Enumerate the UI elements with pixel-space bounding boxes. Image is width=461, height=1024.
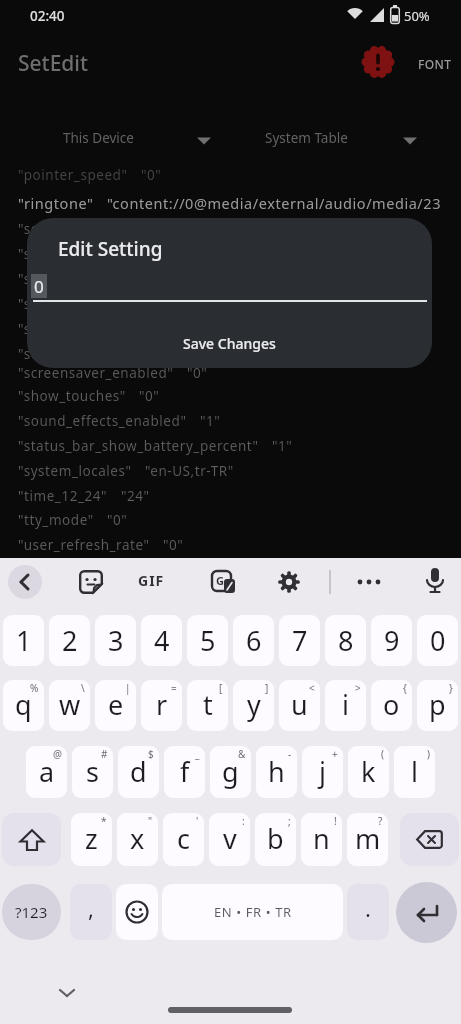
- button[interactable]: [355, 565, 385, 599]
- button[interactable]: .: [347, 884, 389, 940]
- staticText: "24": [121, 487, 150, 505]
- staticText: !: [334, 814, 337, 828]
- staticText: (: [381, 747, 384, 761]
- staticText: G: [216, 573, 224, 588]
- button[interactable]: [78, 569, 104, 595]
- button[interactable]: ?123: [2, 884, 61, 940]
- button[interactable]: u: [279, 680, 320, 731]
- button[interactable]: m: [347, 813, 388, 866]
- staticText: {: [403, 681, 407, 695]
- staticText: 02:40: [30, 7, 65, 25]
- button[interactable]: [116, 884, 158, 940]
- button[interactable]: y: [233, 680, 274, 731]
- button[interactable]: c: [163, 813, 204, 866]
- button[interactable]: e: [95, 680, 136, 731]
- staticText: p: [429, 686, 446, 723]
- button[interactable]: [424, 567, 446, 597]
- button[interactable]: g: [210, 746, 251, 798]
- button[interactable]: 4: [141, 615, 182, 666]
- button[interactable]: GIF: [138, 571, 165, 590]
- button[interactable]: EN • FR • TR: [162, 884, 343, 940]
- button[interactable]: 2: [49, 615, 90, 666]
- staticText: k: [361, 753, 376, 790]
- staticText: 3: [108, 622, 124, 659]
- button[interactable]: 0: [417, 615, 458, 666]
- button[interactable]: h: [256, 746, 297, 798]
- button[interactable]: "time_12_24": [18, 487, 150, 505]
- staticText: b: [267, 820, 284, 857]
- button[interactable]: w: [49, 680, 90, 731]
- staticText: "screensaver_enabled": [18, 364, 174, 382]
- button[interactable]: q: [3, 680, 44, 731]
- staticText: 50%: [404, 7, 430, 25]
- button[interactable]: a: [26, 746, 67, 798]
- button[interactable]: x: [117, 813, 158, 866]
- button[interactable]: System Table: [231, 120, 461, 162]
- button[interactable]: This Device: [0, 120, 230, 162]
- staticText: "1": [272, 437, 293, 455]
- staticText: u: [291, 686, 308, 723]
- staticText: Save Changes: [183, 334, 276, 353]
- staticText: #: [101, 747, 108, 761]
- staticText: =: [171, 681, 177, 695]
- button[interactable]: Save Changes: [175, 326, 284, 361]
- button[interactable]: "screensaver_enabled": [18, 364, 208, 382]
- button[interactable]: "user_refresh_rate": [18, 536, 184, 554]
- button[interactable]: o: [371, 680, 412, 731]
- staticText: "pointer_speed": [18, 166, 128, 184]
- staticText: g: [222, 753, 239, 790]
- button[interactable]: [276, 569, 302, 595]
- button[interactable]: l: [394, 746, 435, 798]
- button[interactable]: "screen_brightness_mode": [18, 270, 234, 288]
- button[interactable]: [8, 565, 42, 599]
- button[interactable]: "screen_brightness": [18, 220, 197, 238]
- button[interactable]: v: [209, 813, 250, 866]
- button[interactable]: b: [255, 813, 296, 866]
- button[interactable]: t: [187, 680, 228, 731]
- staticText: c: [177, 820, 190, 857]
- button[interactable]: 9: [371, 615, 412, 666]
- button[interactable]: "system_locales": [18, 462, 234, 480]
- staticText: h: [268, 753, 285, 790]
- button[interactable]: 3: [95, 615, 136, 666]
- button[interactable]: 5: [187, 615, 228, 666]
- button[interactable]: "status_bar_show_battery_percent": [18, 437, 293, 455]
- button[interactable]: "sound_effects_enabled": [18, 412, 221, 430]
- staticText: "0": [107, 511, 128, 529]
- button[interactable]: "screen_off_timeout": [18, 295, 229, 313]
- button[interactable]: "tty_mode": [18, 511, 128, 529]
- button[interactable]: [2, 813, 61, 866]
- staticText: 7: [292, 622, 308, 659]
- button[interactable]: [400, 813, 459, 866]
- button[interactable]: 6: [233, 615, 274, 666]
- button[interactable]: r: [141, 680, 182, 731]
- button[interactable]: n: [301, 813, 342, 866]
- button[interactable]: "show_touches": [18, 387, 160, 405]
- staticText: :: [242, 814, 245, 828]
- button[interactable]: G: [210, 569, 236, 595]
- button[interactable]: p: [417, 680, 458, 731]
- button[interactable]: ,: [70, 884, 112, 940]
- button[interactable]: 1: [3, 615, 44, 666]
- staticText: "user_refresh_rate": [18, 536, 150, 554]
- staticText: "content://0@media/external/audio/media/…: [107, 193, 441, 213]
- button[interactable]: "setup_wizard_has_run": [18, 345, 215, 363]
- button[interactable]: [360, 44, 396, 80]
- button[interactable]: d: [118, 746, 159, 798]
- staticText: 9: [384, 622, 400, 659]
- staticText: %: [30, 681, 39, 695]
- button[interactable]: [396, 882, 457, 943]
- button[interactable]: k: [348, 746, 389, 798]
- button[interactable]: f: [164, 746, 205, 798]
- button[interactable]: 7: [279, 615, 320, 666]
- button[interactable]: z: [71, 813, 112, 866]
- staticText: |: [125, 681, 131, 695]
- button[interactable]: s: [72, 746, 113, 798]
- button[interactable]: j: [302, 746, 343, 798]
- button[interactable]: "select_keyboard": [18, 320, 174, 338]
- button[interactable]: 8: [325, 615, 366, 666]
- button[interactable]: "screen_brightness_float": [18, 245, 248, 263]
- button[interactable]: "ringtone": [18, 193, 441, 213]
- button[interactable]: i: [325, 680, 366, 731]
- button[interactable]: "pointer_speed": [18, 166, 162, 184]
